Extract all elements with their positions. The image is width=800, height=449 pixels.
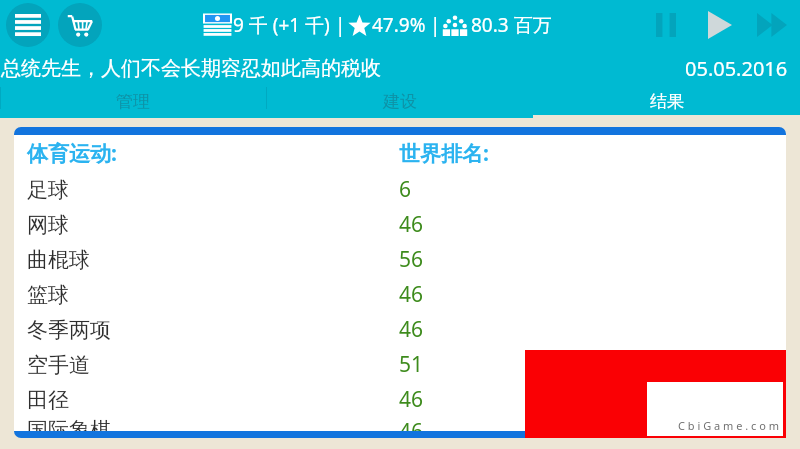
button[interactable]: 冬季两项	[14, 312, 786, 347]
staticText: 冬季两项	[27, 317, 111, 343]
staticText: 篮球	[27, 282, 69, 308]
staticText: 管理	[116, 91, 150, 112]
staticText: 46	[399, 385, 424, 414]
button[interactable]: Fast forward	[750, 3, 794, 47]
staticText: 46	[399, 210, 424, 239]
button[interactable]: Menu	[6, 3, 50, 47]
staticText: 总统先生，人们不会长期容忍如此高的税收	[1, 56, 381, 81]
button[interactable]: 足球	[14, 172, 786, 207]
staticText: 结果	[650, 91, 684, 112]
staticText: 曲棍球	[27, 247, 90, 273]
staticText: 足球	[27, 177, 69, 203]
staticText: 80.3 百万	[471, 12, 552, 38]
staticText: 46	[399, 280, 424, 309]
button[interactable]: 结果	[533, 87, 800, 118]
staticText: 47.9%	[372, 12, 426, 38]
staticText: 56	[399, 245, 424, 274]
staticText: 田径	[27, 387, 69, 413]
staticText: 体育运动:	[27, 139, 117, 168]
button[interactable]: Play	[698, 3, 742, 47]
staticText: 51	[399, 350, 424, 379]
button[interactable]: 体育运动:	[14, 135, 786, 172]
staticText: |	[335, 12, 346, 38]
staticText: C b i G a m e . c o m	[678, 418, 779, 433]
button[interactable]: 空手道	[14, 347, 786, 382]
staticText: 46	[399, 315, 424, 344]
button[interactable]: 建设	[266, 87, 533, 118]
staticText: 46	[399, 417, 424, 431]
button[interactable]: Pause	[646, 5, 686, 45]
button[interactable]: 管理	[0, 87, 266, 118]
staticText: 05.05.2016	[685, 55, 788, 82]
staticText: 世界排名:	[399, 139, 489, 168]
staticText: 国际象棋	[27, 417, 111, 431]
staticText: 空手道	[27, 352, 90, 378]
button[interactable]: 国际象棋	[14, 417, 786, 431]
staticText: |	[430, 12, 441, 38]
staticText: 6	[399, 175, 412, 204]
staticText: 9 千 (+1 千)	[233, 12, 330, 38]
button[interactable]: 曲棍球	[14, 242, 786, 277]
button[interactable]: 篮球	[14, 277, 786, 312]
staticText: 网球	[27, 212, 69, 238]
button[interactable]: 田径	[14, 382, 786, 417]
button[interactable]: Shop	[58, 3, 102, 47]
staticText: 建设	[383, 91, 417, 112]
button[interactable]: 网球	[14, 207, 786, 242]
